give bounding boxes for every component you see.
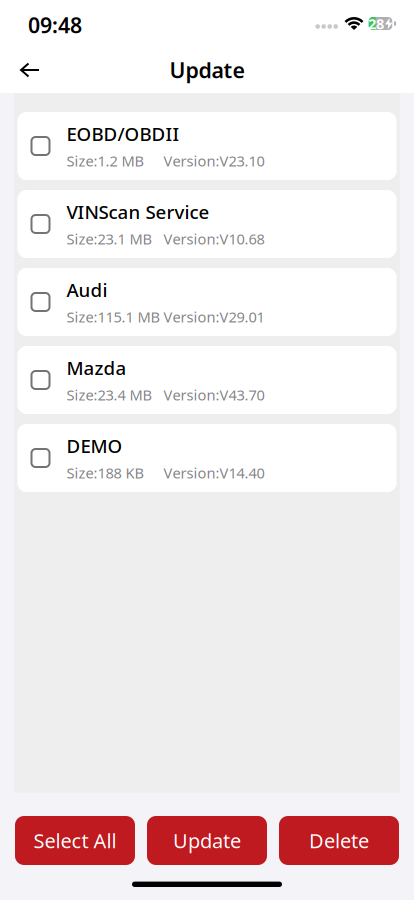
staticText: 09:48	[28, 11, 82, 39]
button[interactable]: Audi	[17, 268, 396, 336]
staticText: VINScan Service	[66, 199, 209, 224]
staticText: EOBD/OBDII	[66, 121, 179, 146]
staticText: Size:115.1 MB	[66, 307, 160, 327]
staticText: 28	[368, 14, 384, 33]
staticText: Update	[173, 827, 241, 854]
staticText: Version:V10.68	[163, 229, 264, 249]
staticText: Version:V43.70	[163, 385, 264, 405]
staticText: Delete	[309, 827, 369, 854]
staticText: Update	[169, 56, 244, 84]
button[interactable]: Update	[147, 816, 267, 865]
staticText: Size:23.1 MB	[66, 229, 152, 249]
button[interactable]: EOBD/OBDII	[17, 112, 396, 180]
staticText: Size:23.4 MB	[66, 385, 152, 405]
button[interactable]: VINScan Service	[17, 190, 396, 258]
staticText: Version:V29.01	[163, 307, 264, 327]
staticText: Version:V23.10	[163, 151, 264, 171]
staticText: Select All	[33, 827, 116, 854]
staticText: Size:188 KB	[66, 463, 144, 483]
staticText: Version:V14.40	[163, 463, 264, 483]
button[interactable]: Delete	[279, 816, 399, 865]
staticText: Size:1.2 MB	[66, 151, 144, 171]
button[interactable]: Back	[0, 55, 49, 85]
staticText: Mazda	[66, 355, 126, 380]
button[interactable]: DEMO	[17, 424, 396, 492]
button[interactable]: Mazda	[17, 346, 396, 414]
staticText: DEMO	[66, 433, 122, 458]
staticText: Audi	[66, 277, 107, 302]
button[interactable]: Select All	[15, 816, 135, 865]
